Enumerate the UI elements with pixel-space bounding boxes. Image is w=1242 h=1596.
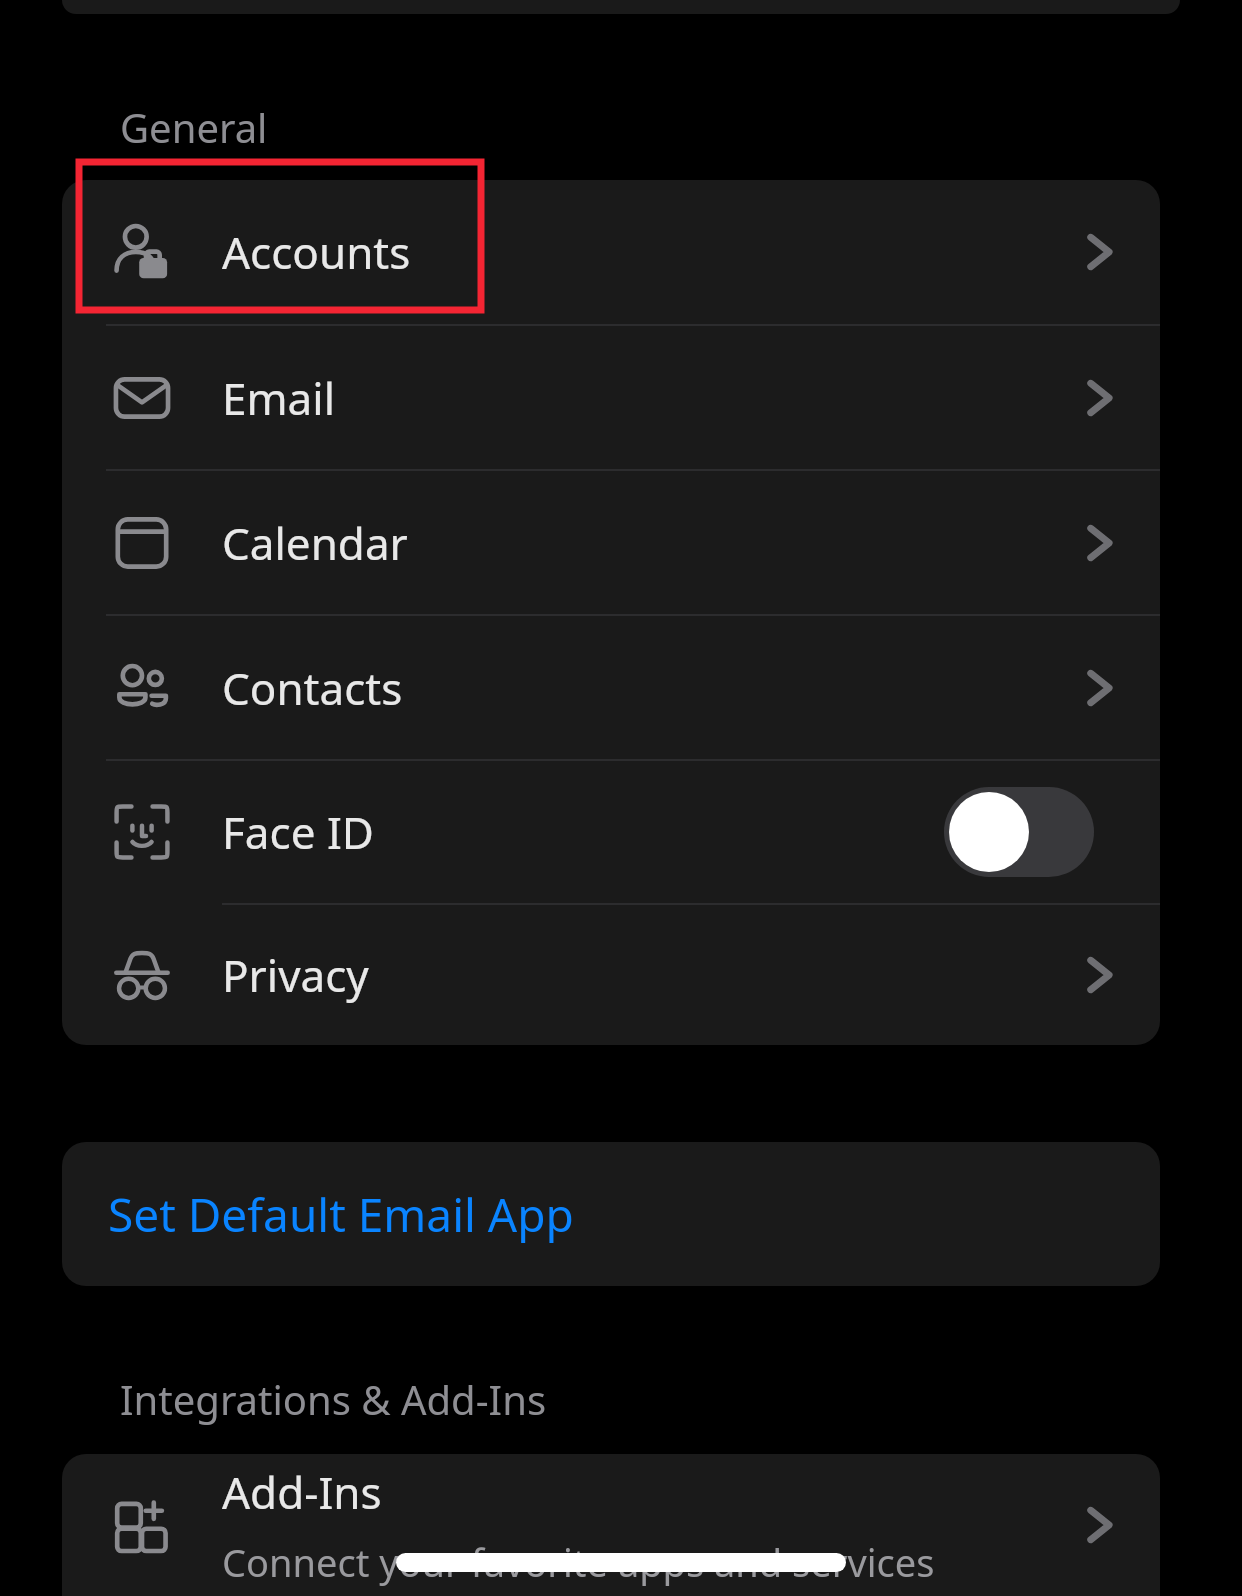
- staticText: Contacts: [222, 658, 403, 718]
- other: Open Privacy: [1076, 952, 1122, 998]
- other: Open Add-Ins: [1076, 1502, 1122, 1548]
- button[interactable]: Calendar: [62, 471, 1160, 614]
- other: Open Calendar: [1076, 520, 1122, 566]
- staticText: Email: [222, 368, 335, 428]
- button[interactable]: Set Default Email App: [62, 1142, 1160, 1286]
- button[interactable]: Contacts: [62, 616, 1160, 759]
- button[interactable]: Add-Ins: [62, 1454, 1160, 1596]
- button[interactable]: Privacy: [62, 905, 1160, 1045]
- staticText: Privacy: [222, 945, 369, 1005]
- staticText: Calendar: [222, 513, 408, 573]
- button[interactable]: Email: [62, 326, 1160, 469]
- button[interactable]: Accounts: [62, 180, 1160, 324]
- staticText: General: [120, 100, 268, 154]
- staticText: Set Default Email App: [108, 1183, 574, 1246]
- staticText: Connect your favorite apps and services: [222, 1536, 935, 1588]
- other: Open Accounts: [1076, 229, 1122, 275]
- button[interactable]: Face ID toggle, off: [944, 787, 1094, 877]
- staticText: Face ID: [222, 802, 374, 862]
- button[interactable]: Face ID: [62, 761, 1160, 903]
- staticText: Accounts: [222, 222, 411, 282]
- staticText: Add-Ins: [222, 1462, 382, 1522]
- other: Open Email: [1076, 375, 1122, 421]
- other: Open Contacts: [1076, 665, 1122, 711]
- staticText: Integrations & Add-Ins: [120, 1372, 547, 1426]
